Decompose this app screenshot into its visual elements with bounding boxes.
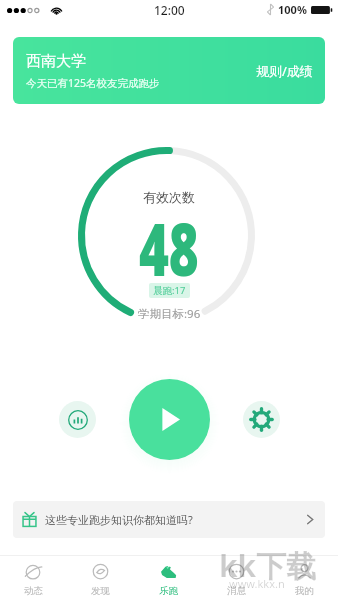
staticText: 规则/成绩 bbox=[256, 62, 313, 80]
staticText: 乐跑 bbox=[159, 585, 178, 597]
button[interactable]: 这些专业跑步知识你都知道吗? bbox=[13, 501, 325, 538]
button[interactable]: 规则/成绩 bbox=[256, 62, 313, 80]
staticText: 今天已有125名校友完成跑步 bbox=[26, 76, 160, 90]
staticText: kk下载 bbox=[219, 545, 317, 586]
button[interactable]: Start run bbox=[129, 379, 210, 460]
button[interactable]: 乐跑 bbox=[134, 556, 202, 600]
staticText: 动态 bbox=[24, 585, 43, 597]
button[interactable]: Settings bbox=[243, 401, 280, 438]
staticText: 48 bbox=[139, 198, 199, 297]
staticText: 100% bbox=[278, 2, 307, 17]
button[interactable]: 西南大学 bbox=[13, 37, 325, 104]
button[interactable]: 我的 bbox=[270, 556, 338, 600]
staticText: 有效次数 bbox=[143, 189, 195, 205]
staticText: 晨跑:17 bbox=[153, 284, 186, 297]
button[interactable]: 消息 bbox=[202, 556, 270, 600]
staticText: 发现 bbox=[91, 585, 110, 597]
staticText: 12:00 bbox=[154, 2, 185, 18]
button[interactable]: 发现 bbox=[67, 556, 134, 600]
button[interactable]: 动态 bbox=[0, 556, 67, 600]
staticText: 消息 bbox=[227, 585, 246, 597]
button[interactable]: Statistics bbox=[59, 401, 96, 438]
staticText: www.kkx.n bbox=[229, 576, 285, 591]
staticText: 学期目标:96 bbox=[138, 306, 201, 322]
staticText: 这些专业跑步知识你都知道吗? bbox=[45, 512, 193, 527]
staticText: 西南大学 bbox=[26, 52, 86, 71]
staticText: 我的 bbox=[295, 585, 314, 597]
